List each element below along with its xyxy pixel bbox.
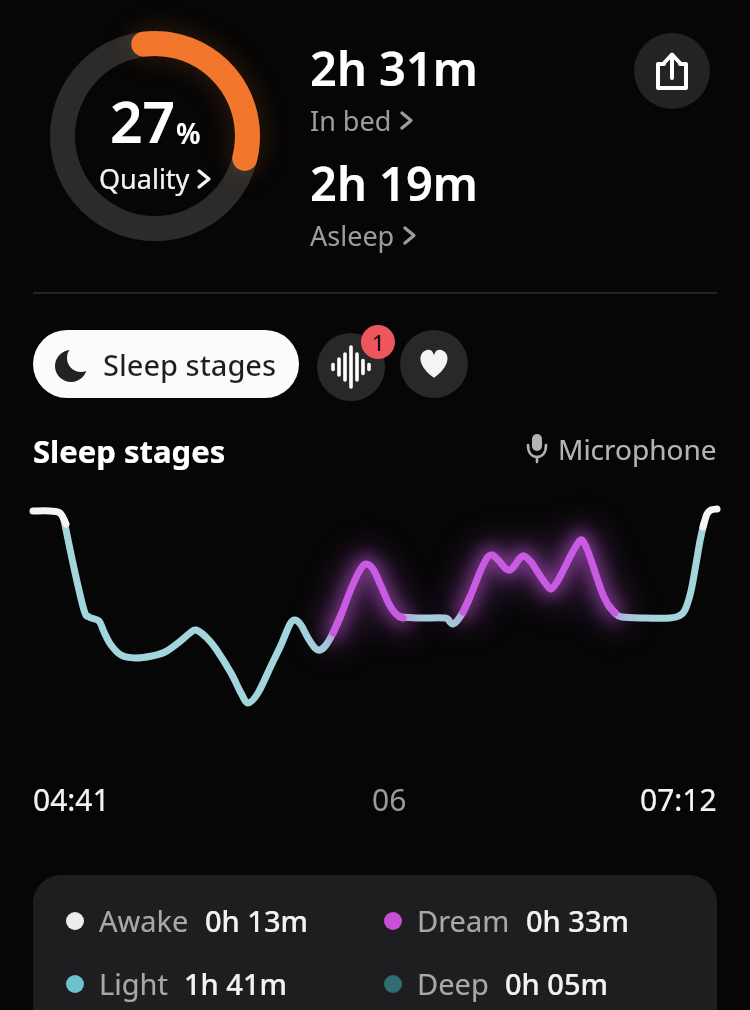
button[interactable]: Sleep stages [33, 330, 299, 398]
staticText: 06 [372, 779, 407, 820]
staticText: 2h 31m [310, 36, 478, 100]
staticText: 07:12 [640, 779, 717, 820]
staticText: 0h 13m [205, 901, 308, 940]
staticText: 04:41 [33, 779, 110, 820]
staticText: 0h 33m [526, 901, 629, 940]
button[interactable]: Dream [384, 901, 684, 940]
button[interactable]: Microphone [520, 430, 717, 468]
button[interactable] [634, 33, 710, 109]
staticText: Deep [417, 964, 489, 1003]
staticText: Dream [417, 901, 510, 940]
button[interactable]: Asleep [310, 217, 416, 254]
staticText: Sleep stages [103, 345, 277, 384]
button[interactable]: Deep [384, 964, 684, 1003]
staticText: Microphone [558, 430, 717, 468]
button[interactable]: Light [66, 964, 384, 1003]
staticText: In bed [310, 102, 392, 139]
staticText: Asleep [310, 217, 395, 254]
staticText: Quality [99, 160, 190, 197]
staticText: 1 [372, 327, 385, 357]
staticText: Sleep stages [33, 430, 226, 472]
staticText: 2h 19m [310, 151, 478, 215]
staticText: 27 [110, 82, 176, 160]
button[interactable] [400, 330, 468, 398]
button[interactable]: 27 [50, 31, 260, 241]
staticText: Awake [99, 901, 189, 940]
staticText: 1h 41m [184, 964, 287, 1003]
button[interactable]: Awake [66, 901, 384, 940]
button[interactable]: In bed [310, 102, 413, 139]
staticText: 0h 05m [505, 964, 608, 1003]
staticText: % [176, 114, 201, 152]
button[interactable] [317, 333, 385, 401]
staticText: Light [99, 964, 168, 1003]
